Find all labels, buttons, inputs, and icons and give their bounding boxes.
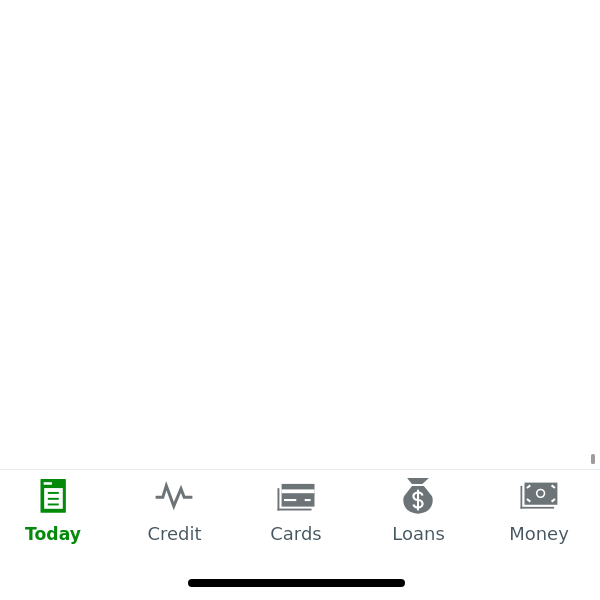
staticText: Cards: [270, 523, 322, 544]
button[interactable]: Credit: [113, 466, 235, 556]
staticText: Loans: [392, 523, 445, 544]
staticText: Money: [509, 523, 569, 544]
button[interactable]: Money: [478, 466, 600, 556]
staticText: Today: [25, 524, 81, 544]
button[interactable]: Loans: [357, 466, 479, 556]
button[interactable]: Cards: [235, 466, 357, 556]
staticText: Credit: [147, 523, 202, 544]
button[interactable]: Today: [0, 466, 114, 556]
